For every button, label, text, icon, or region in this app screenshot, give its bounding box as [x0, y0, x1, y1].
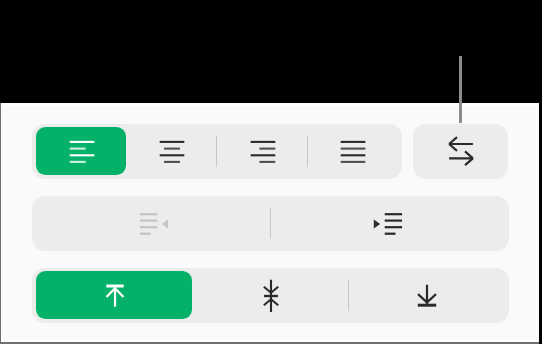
button[interactable]: Align top	[36, 268, 192, 323]
button[interactable]: Align bottom	[348, 268, 504, 323]
button[interactable]: Align center	[126, 124, 216, 179]
button[interactable]: Justify	[307, 124, 397, 179]
button[interactable]: Text direction	[413, 124, 508, 179]
button[interactable]: Align left	[36, 124, 126, 179]
button[interactable]: Align middle	[192, 268, 348, 323]
button[interactable]: Decrease indent	[36, 196, 270, 251]
button[interactable]: Increase indent	[270, 196, 504, 251]
button[interactable]: Align right	[217, 124, 307, 179]
